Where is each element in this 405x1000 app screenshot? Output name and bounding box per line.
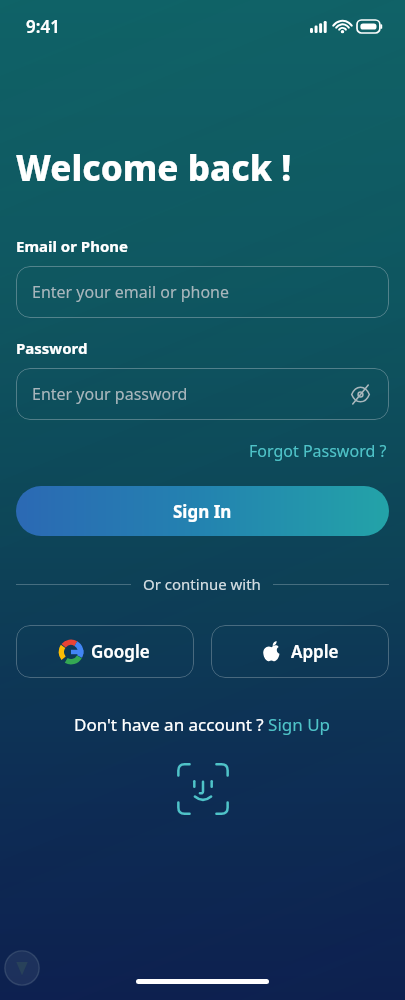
staticText: Apple [291,640,339,663]
button[interactable]: Sign in with Face ID [172,758,234,820]
staticText: Enter your email or phone [32,281,229,303]
staticText: Email or Phone [16,236,128,256]
button[interactable]: Google [16,625,194,678]
button[interactable]: Show password [343,377,377,411]
staticText: Sign In [173,500,232,523]
staticText: Welcome back ! [16,144,292,192]
button[interactable]: Enter your password [16,368,389,420]
button[interactable]: Forgot Password ? [247,438,389,464]
staticText: 9:41 [26,15,60,38]
staticText: Don't have an account ? Sign Up [74,713,331,736]
staticText: Enter your password [32,383,188,405]
staticText: Forgot Password ? [249,440,387,462]
button[interactable]: Sign In [16,486,389,536]
button[interactable]: Enter your email or phone [16,266,389,318]
staticText: Google [91,640,150,663]
staticText: Password [16,338,88,358]
staticText: Or continue with [143,574,261,594]
button[interactable]: Apple [211,625,389,678]
button[interactable]: Don't have an account ? Sign Up [0,713,405,736]
